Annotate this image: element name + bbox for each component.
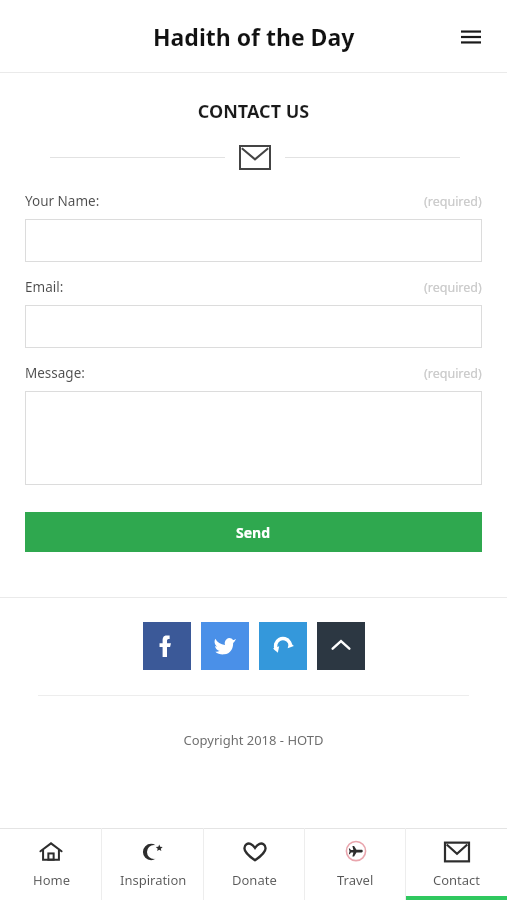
- button[interactable]: Refresh: [259, 622, 307, 670]
- button[interactable]: Send: [25, 512, 482, 552]
- staticText: (required): [424, 365, 482, 382]
- button[interactable]: [25, 391, 482, 485]
- staticText: (required): [424, 279, 482, 296]
- staticText: Your Name:: [25, 192, 100, 210]
- staticText: Send: [236, 523, 271, 542]
- button[interactable]: [25, 305, 482, 348]
- button[interactable]: Scroll to top: [317, 622, 365, 670]
- staticText: Message:: [25, 364, 85, 382]
- staticText: Email:: [25, 278, 64, 296]
- button[interactable]: Facebook: [143, 622, 191, 670]
- staticText: Donate: [232, 871, 277, 889]
- staticText: Contact: [433, 871, 481, 889]
- staticText: Hadith of the Day: [153, 21, 355, 52]
- button[interactable]: Donate: [204, 828, 305, 900]
- button[interactable]: Home: [0, 828, 102, 900]
- staticText: (required): [424, 193, 482, 210]
- button[interactable]: Travel: [305, 828, 406, 900]
- button[interactable]: Twitter: [201, 622, 249, 670]
- staticText: Inspiration: [120, 871, 187, 889]
- button[interactable]: [25, 219, 482, 262]
- button[interactable]: Contact: [406, 828, 507, 900]
- staticText: Home: [33, 871, 70, 889]
- button[interactable]: Menu: [449, 15, 493, 59]
- button[interactable]: Inspiration: [102, 828, 204, 900]
- staticText: Copyright 2018 - HOTD: [0, 731, 507, 749]
- staticText: CONTACT US: [0, 99, 507, 124]
- staticText: Travel: [337, 871, 374, 889]
